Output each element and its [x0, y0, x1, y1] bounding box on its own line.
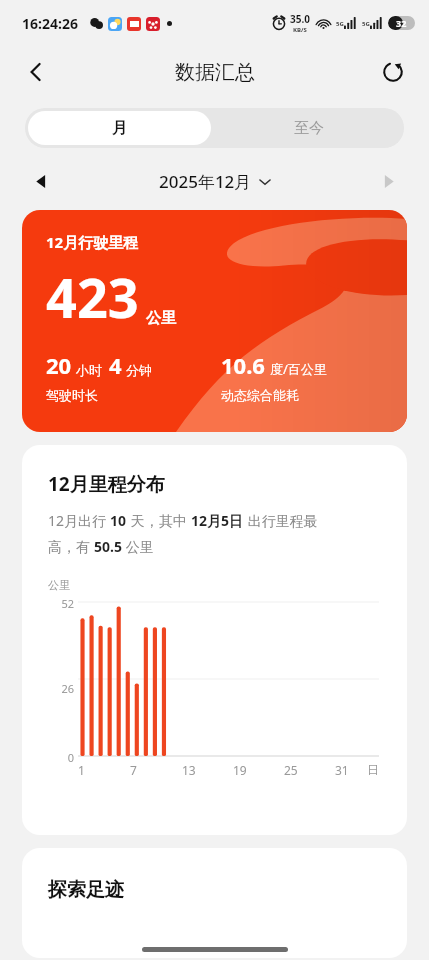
staticText: 1 [78, 762, 85, 778]
staticText: 2025年12月 [159, 170, 252, 193]
staticText: 至今 [294, 119, 324, 138]
staticText: 4 [109, 350, 122, 380]
staticText: 35.0 [290, 12, 310, 26]
staticText: 12月出行 [48, 511, 110, 530]
button[interactable]: 12月里程分布 [22, 445, 407, 835]
staticText: 19 [233, 762, 247, 778]
staticText: 分钟 [126, 362, 152, 378]
staticText: 12月里程分布 [48, 471, 165, 497]
staticText: 26 [61, 681, 74, 696]
staticText: 驾驶时长 [46, 387, 98, 403]
staticText: 公里 [48, 578, 70, 592]
staticText: 出行里程最 [244, 511, 318, 530]
button[interactable]: Refresh [371, 50, 415, 94]
staticText: 5G [362, 20, 370, 28]
staticText: 12月5日 [191, 511, 244, 530]
staticText: 12月行驶里程 [46, 232, 139, 252]
staticText: 日 [367, 762, 379, 777]
staticText: KB/S [293, 26, 307, 34]
button[interactable]: Previous month [26, 166, 56, 196]
staticText: 月 [112, 119, 127, 138]
staticText: 25 [284, 762, 298, 778]
staticText: 公里 [122, 537, 154, 556]
staticText: 天，其中 [127, 511, 191, 530]
staticText: 高，有 [48, 537, 94, 556]
staticText: 10.6 [221, 350, 265, 380]
staticText: 13 [182, 762, 196, 778]
staticText: 50.5 [94, 537, 122, 556]
staticText: 公里 [146, 309, 176, 328]
staticText: 度/百公里 [270, 360, 327, 378]
staticText: 31 [335, 762, 349, 778]
staticText: 7 [130, 762, 137, 778]
button[interactable]: Next month [373, 166, 403, 196]
staticText: 探索足迹 [48, 878, 124, 902]
staticText: 数据汇总 [175, 60, 255, 85]
staticText: 20 [46, 350, 72, 380]
staticText: 小时 [76, 362, 102, 378]
staticText: 16:24:26 [22, 14, 78, 33]
staticText: 52 [61, 596, 74, 611]
button[interactable]: 12月行驶里程 [22, 210, 407, 432]
button[interactable]: 月 [28, 111, 211, 145]
staticText: 动态综合能耗 [221, 387, 299, 403]
button[interactable]: Back [14, 50, 58, 94]
button[interactable]: 探索足迹 [22, 848, 407, 958]
button[interactable]: 至今 [214, 108, 404, 148]
staticText: 5G [336, 20, 344, 28]
staticText: 32 [396, 17, 407, 29]
staticText: 0 [67, 750, 74, 765]
staticText: 10 [110, 511, 127, 530]
staticText: 423 [46, 260, 139, 334]
